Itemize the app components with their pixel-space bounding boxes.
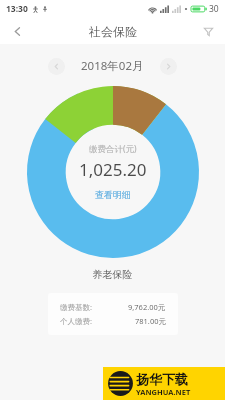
staticText: 社会保险 bbox=[89, 24, 137, 39]
staticText: 2018年02月 bbox=[81, 58, 144, 74]
staticText: 扬华下载 bbox=[136, 371, 188, 387]
staticText: 个人缴费: bbox=[60, 316, 93, 326]
staticText: YANGHUA.NET bbox=[136, 387, 191, 397]
button[interactable]: Filter bbox=[191, 18, 225, 44]
staticText: 9,762.00元 bbox=[128, 302, 166, 312]
staticText: 缴费合计(元) bbox=[89, 143, 137, 155]
staticText: 查看明细 bbox=[95, 189, 131, 200]
staticText: 781.00元 bbox=[135, 316, 166, 326]
button[interactable]: Back bbox=[0, 18, 34, 44]
staticText: 30 bbox=[209, 3, 219, 15]
staticText: 缴费基数: bbox=[60, 302, 93, 312]
button[interactable]: Next month bbox=[160, 58, 177, 75]
staticText: 1,025.20 bbox=[79, 158, 147, 181]
staticText: 养老保险 bbox=[0, 268, 225, 281]
staticText: 13:30 bbox=[6, 3, 28, 15]
button[interactable]: Previous month bbox=[48, 58, 65, 75]
button[interactable]: 查看明细 bbox=[91, 188, 135, 201]
button[interactable]: 缴费基数: bbox=[48, 293, 178, 335]
